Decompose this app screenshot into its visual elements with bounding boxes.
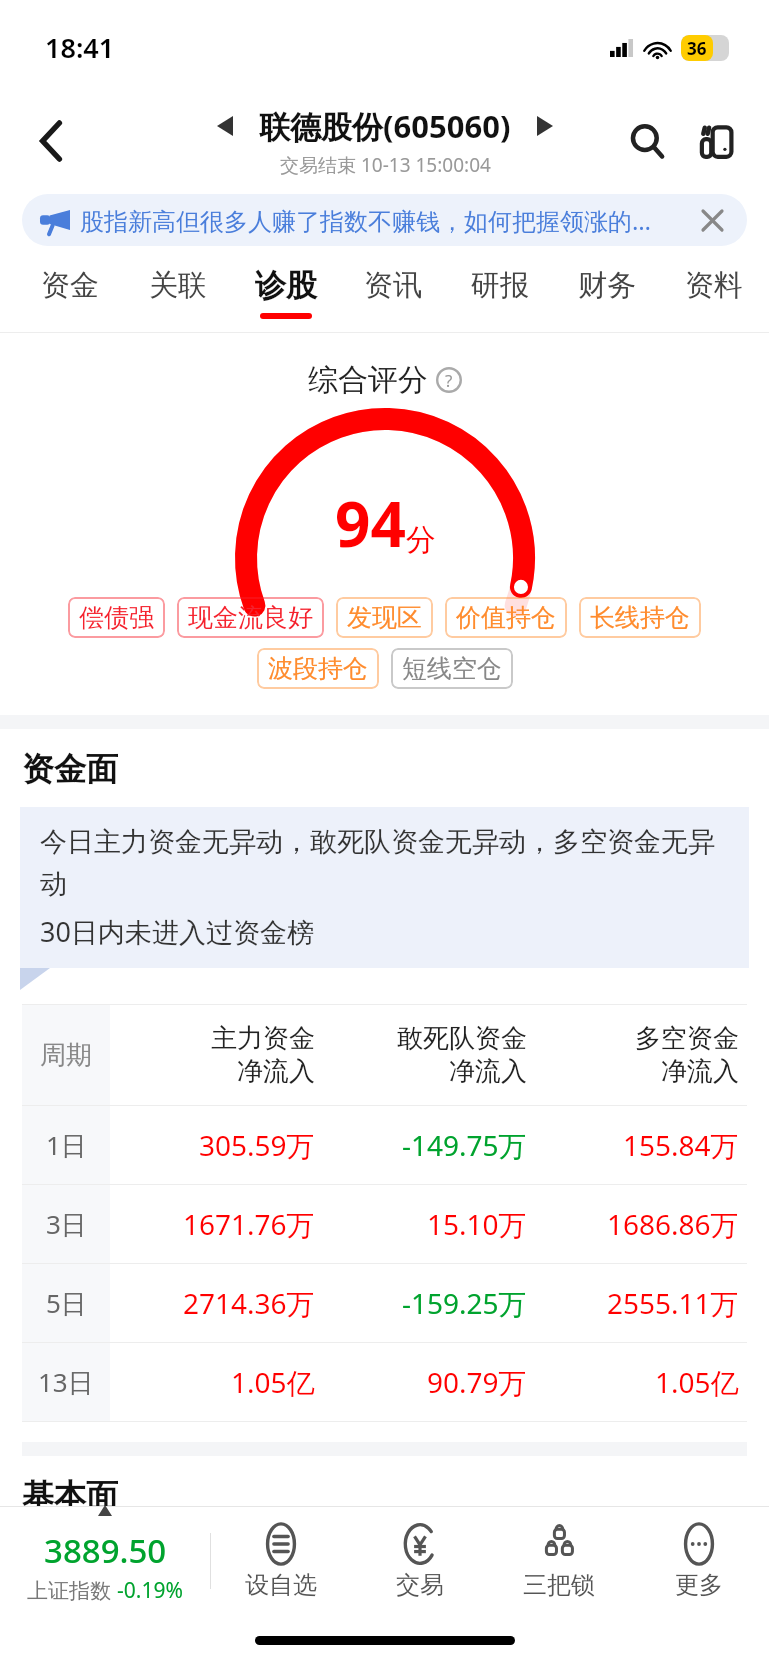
staticText: 2555.11万: [607, 1284, 739, 1322]
staticText: 交易结束 10-13 15:00:04: [280, 152, 491, 178]
staticText: 周期: [40, 1039, 92, 1072]
button[interactable]: 资料: [660, 252, 767, 332]
staticText: -0.19%: [117, 1576, 183, 1605]
button[interactable]: 关联: [124, 252, 232, 332]
button[interactable]: 波段持仓: [257, 648, 379, 689]
button[interactable]: 诊股: [232, 252, 339, 332]
staticText: 波段持仓: [268, 653, 368, 684]
staticText: 净流入: [661, 1055, 739, 1088]
staticText: 交易: [396, 1570, 444, 1600]
staticText: 资金: [41, 267, 99, 304]
staticText: 1.05亿: [655, 1363, 739, 1401]
staticText: 发现区: [347, 602, 422, 633]
staticText: 1671.76万: [183, 1205, 315, 1243]
staticText: 股指新高但很多人赚了指数不赚钱，如何把握领涨的…: [80, 204, 687, 237]
staticText: 资讯: [364, 267, 422, 304]
staticText: -149.75万: [402, 1126, 527, 1164]
staticText: 综合评分: [308, 361, 428, 399]
button[interactable]: 发现区: [336, 597, 433, 638]
button[interactable]: 资讯: [339, 252, 446, 332]
staticText: 上证指数: [27, 1576, 117, 1605]
button[interactable]: 交易: [350, 1507, 489, 1615]
staticText: 敢死队资金: [397, 1022, 527, 1055]
button[interactable]: Close: [695, 203, 729, 237]
staticText: -159.25万: [402, 1284, 527, 1322]
staticText: 短线空仓: [402, 653, 502, 684]
staticText: 分: [406, 521, 436, 559]
staticText: ?: [445, 369, 453, 392]
staticText: 净流入: [237, 1055, 315, 1088]
button[interactable]: 更多: [629, 1507, 769, 1615]
staticText: 13日: [38, 1364, 94, 1400]
button[interactable]: 资金: [16, 252, 124, 332]
staticText: 现金流良好: [188, 602, 313, 633]
staticText: 研报: [471, 267, 529, 304]
staticText: 三把锁: [523, 1570, 595, 1600]
staticText: 联德股份(605060): [259, 105, 511, 147]
staticText: 长线持仓: [590, 602, 690, 633]
button[interactable]: Compare: [689, 113, 745, 169]
staticText: 1686.86万: [607, 1205, 739, 1243]
staticText: 资料: [685, 267, 743, 304]
staticText: 155.84万: [623, 1126, 739, 1164]
button[interactable]: Search: [619, 113, 675, 169]
button[interactable]: 股指新高但很多人赚了指数不赚钱，如何把握领涨的…: [22, 194, 747, 246]
button[interactable]: 3889.50: [0, 1507, 210, 1615]
staticText: 5日: [46, 1285, 87, 1321]
staticText: 价值持仓: [456, 602, 556, 633]
staticText: 设自选: [245, 1570, 317, 1600]
staticText: 1日: [46, 1127, 87, 1163]
staticText: 2714.36万: [183, 1284, 315, 1322]
staticText: 18:41: [45, 29, 115, 66]
button[interactable]: 价值持仓: [445, 597, 567, 638]
staticText: 资金面: [22, 749, 118, 789]
staticText: 基本面: [22, 1476, 118, 1516]
button[interactable]: 短线空仓: [391, 648, 513, 689]
staticText: 偿债强: [79, 602, 154, 633]
staticText: 多空资金: [635, 1022, 739, 1055]
staticText: 3日: [46, 1206, 87, 1242]
staticText: 诊股: [255, 266, 317, 305]
staticText: 1.05亿: [231, 1363, 315, 1401]
button[interactable]: 研报: [446, 252, 553, 332]
button[interactable]: 偿债强: [68, 597, 165, 638]
button[interactable]: 三把锁: [489, 1507, 629, 1615]
button[interactable]: 现金流良好: [177, 597, 324, 638]
button[interactable]: 长线持仓: [579, 597, 701, 638]
staticText: 今日主力资金无异动，敢死队资金无异动，多空资金无异动: [40, 825, 729, 901]
staticText: 更多: [675, 1570, 723, 1600]
staticText: 关联: [149, 267, 207, 304]
staticText: 94: [335, 481, 406, 565]
staticText: 30日内未进入过资金榜: [40, 913, 314, 950]
staticText: 财务: [578, 267, 636, 304]
staticText: 36: [687, 37, 707, 60]
staticText: 90.79万: [427, 1363, 527, 1401]
staticText: 3889.50: [44, 1528, 167, 1573]
staticText: 15.10万: [427, 1205, 527, 1243]
button[interactable]: Help: [436, 367, 462, 393]
button[interactable]: 设自选: [211, 1507, 350, 1615]
staticText: 305.59万: [199, 1126, 315, 1164]
staticText: 主力资金: [211, 1022, 315, 1055]
button[interactable]: Back: [22, 112, 80, 170]
button[interactable]: 财务: [553, 252, 660, 332]
staticText: 净流入: [449, 1055, 527, 1088]
